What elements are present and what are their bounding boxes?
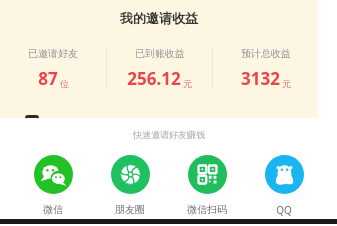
staticText: 87 xyxy=(38,67,58,90)
button[interactable]: Share to Moments xyxy=(96,153,164,218)
button[interactable]: WeChat QR code xyxy=(173,153,241,218)
staticText: 已到账收益 xyxy=(135,47,185,60)
button[interactable]: Share to QQ xyxy=(250,153,318,219)
staticText: 预计总收益 xyxy=(241,47,291,60)
staticText: 微信 xyxy=(43,203,63,216)
staticText: 元 xyxy=(183,78,192,89)
staticText: 朋友圈 xyxy=(115,203,145,216)
staticText: 快速邀请好友赚钱 xyxy=(133,129,205,140)
staticText: 元 xyxy=(282,78,291,89)
staticText: QQ xyxy=(276,203,292,217)
staticText: 已邀请好友 xyxy=(28,47,78,60)
staticText: 256.12 xyxy=(127,67,181,90)
staticText: 微信扫码 xyxy=(187,203,227,216)
staticText: 3132 xyxy=(241,67,280,90)
staticText: 位 xyxy=(60,78,69,89)
staticText: 我的邀请收益 xyxy=(120,10,198,26)
button[interactable]: Share to WeChat xyxy=(19,153,87,218)
